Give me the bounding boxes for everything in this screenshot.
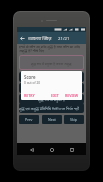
button[interactable]: RETRY: [22, 92, 37, 99]
staticText: व्याकरण क्विज़: [28, 35, 52, 41]
staticText: Skip: [70, 117, 78, 122]
button[interactable]: Next: [42, 115, 62, 124]
staticText: Score: [24, 74, 36, 80]
staticText: EXIT: [51, 93, 59, 98]
button[interactable]: Home: [47, 145, 56, 154]
button[interactable]: EXIT: [49, 92, 61, 99]
button[interactable]: अशुद्ध रूप में प्रयुक्त है: [19, 83, 84, 93]
button[interactable]: Skip: [64, 115, 84, 124]
button[interactable]: Back: [17, 32, 28, 44]
button[interactable]: शुद्ध रूप से प्रयुक्त है: [19, 94, 84, 104]
staticText: शुद्ध एवं अशुद्ध प्रतिनिधि स्वरूप पर निर…: [19, 106, 84, 111]
staticText: Next: [48, 117, 56, 122]
button[interactable]: शुद्ध रूप में प्रयुक्त नहीं है: [19, 72, 84, 82]
button[interactable]: शुद्ध एवं अशुद्ध प्रतिनिधि स्वरूप पर निर…: [19, 103, 84, 113]
staticText: शुद्ध रूप में प्रयुक्त है अथवा अशुद्ध: [31, 61, 72, 65]
staticText: REVIEW: [65, 93, 79, 98]
staticText: शुद्ध रूप से प्रयुक्त है: [38, 97, 66, 102]
staticText: 21/21: [58, 35, 70, 41]
button[interactable]: Prev: [19, 115, 39, 124]
button[interactable]: शुद्ध रूप में प्रयुक्त है अथवा अशुद्ध: [19, 55, 84, 70]
button[interactable]: Back: [27, 145, 36, 154]
button[interactable]: REVIEW: [63, 92, 81, 99]
staticText: Prev: [25, 117, 33, 122]
staticText: RETRY: [24, 93, 35, 98]
button[interactable]: Recent apps: [67, 145, 76, 154]
staticText: 0 out of 20: [24, 81, 41, 85]
staticText: इनमें से कौन सा शब्द शुद्ध है तथा कौन सा…: [19, 44, 84, 53]
